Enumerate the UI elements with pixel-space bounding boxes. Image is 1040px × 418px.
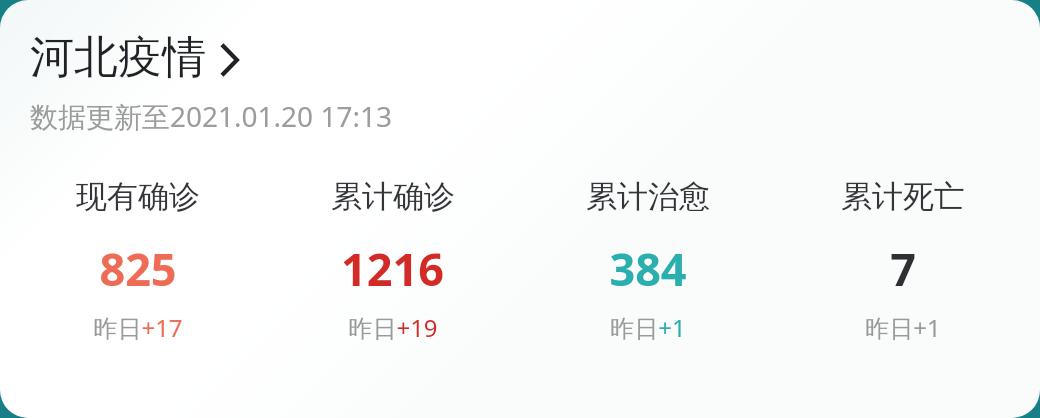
staticText: 累计死亡 [841, 177, 965, 216]
button[interactable]: 现有确诊 [10, 175, 265, 346]
staticText: 昨日+17 [93, 311, 183, 344]
staticText: 现有确诊 [76, 177, 200, 216]
staticText: 昨日+19 [348, 311, 438, 344]
button[interactable]: 累计死亡 [775, 175, 1030, 346]
staticText: 累计确诊 [331, 177, 455, 216]
staticText: 累计治愈 [586, 177, 710, 216]
button[interactable]: 累计治愈 [520, 175, 775, 346]
staticText: 河北疫情 [30, 30, 206, 85]
other: 查看详情 [218, 41, 240, 79]
staticText: 昨日+1 [865, 311, 941, 344]
staticText: 7 [890, 238, 916, 299]
staticText: 825 [99, 238, 177, 299]
staticText: 384 [609, 238, 687, 299]
button[interactable]: 河北疫情 [30, 30, 240, 85]
staticText: 1216 [341, 238, 444, 299]
button[interactable]: 累计确诊 [265, 175, 520, 346]
staticText: 昨日+1 [610, 311, 686, 344]
staticText: 数据更新至2021.01.20 17:13 [30, 97, 392, 135]
